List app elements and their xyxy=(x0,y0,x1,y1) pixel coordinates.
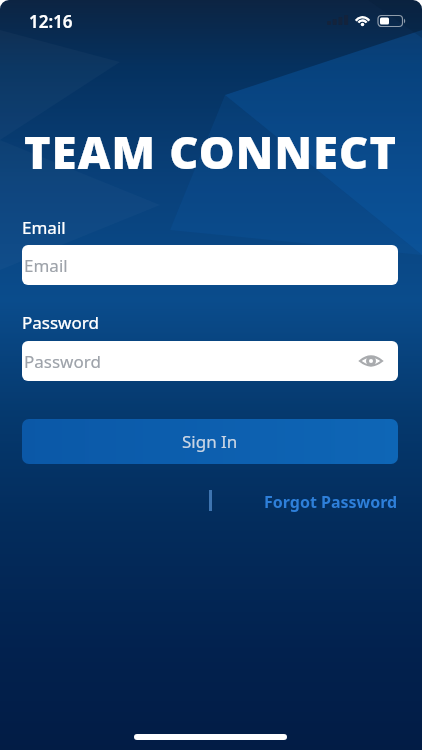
staticText: Email xyxy=(22,216,66,239)
staticText: TEAM CONNECT xyxy=(24,121,398,182)
staticText: 12:16 xyxy=(29,10,73,33)
button[interactable]: Forgot Password xyxy=(264,491,398,513)
button[interactable]: Password xyxy=(22,341,398,381)
staticText: Sign In xyxy=(182,430,238,453)
staticText: Password xyxy=(22,311,99,334)
button[interactable]: Email xyxy=(22,245,398,285)
button[interactable]: Sign In xyxy=(22,419,398,464)
button[interactable] xyxy=(358,348,384,374)
staticText: Email xyxy=(24,254,68,277)
staticText: Forgot Password xyxy=(264,491,398,513)
staticText: Password xyxy=(24,350,101,373)
